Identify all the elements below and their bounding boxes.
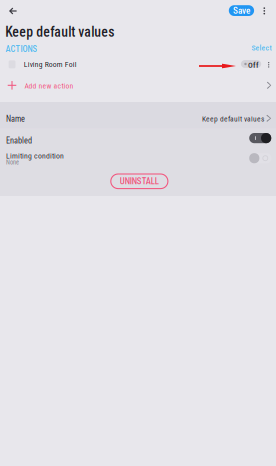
staticText: None [6,159,19,166]
staticText: Living Room Foil [24,60,77,69]
staticText: Enabled [6,136,32,146]
button[interactable]: Living Room Foil [0,54,237,76]
staticText: Keep default values [202,115,264,123]
button[interactable]: Add new action [0,74,276,96]
button[interactable]: Save [229,5,254,16]
button[interactable]: Off [241,61,261,69]
staticText: Keep default values [5,24,114,40]
staticText: Name [6,114,25,124]
staticText: Limiting condition [6,151,64,160]
staticText: Add new action [25,81,74,90]
button[interactable]: UNINSTALL [111,174,168,189]
staticText: Save [233,5,250,16]
staticText: Select [251,43,271,52]
button[interactable]: Action options [263,58,275,72]
button[interactable]: Name [0,102,276,128]
button[interactable]: More options [256,2,272,20]
staticText: Off [248,60,259,70]
staticText: ACTIONS [6,44,38,54]
staticText: UNINSTALL [120,176,159,186]
button[interactable]: Limiting condition [0,152,276,171]
button[interactable]: Select [249,42,273,54]
button[interactable]: Enabled [0,129,276,152]
button[interactable]: Back [2,0,24,22]
